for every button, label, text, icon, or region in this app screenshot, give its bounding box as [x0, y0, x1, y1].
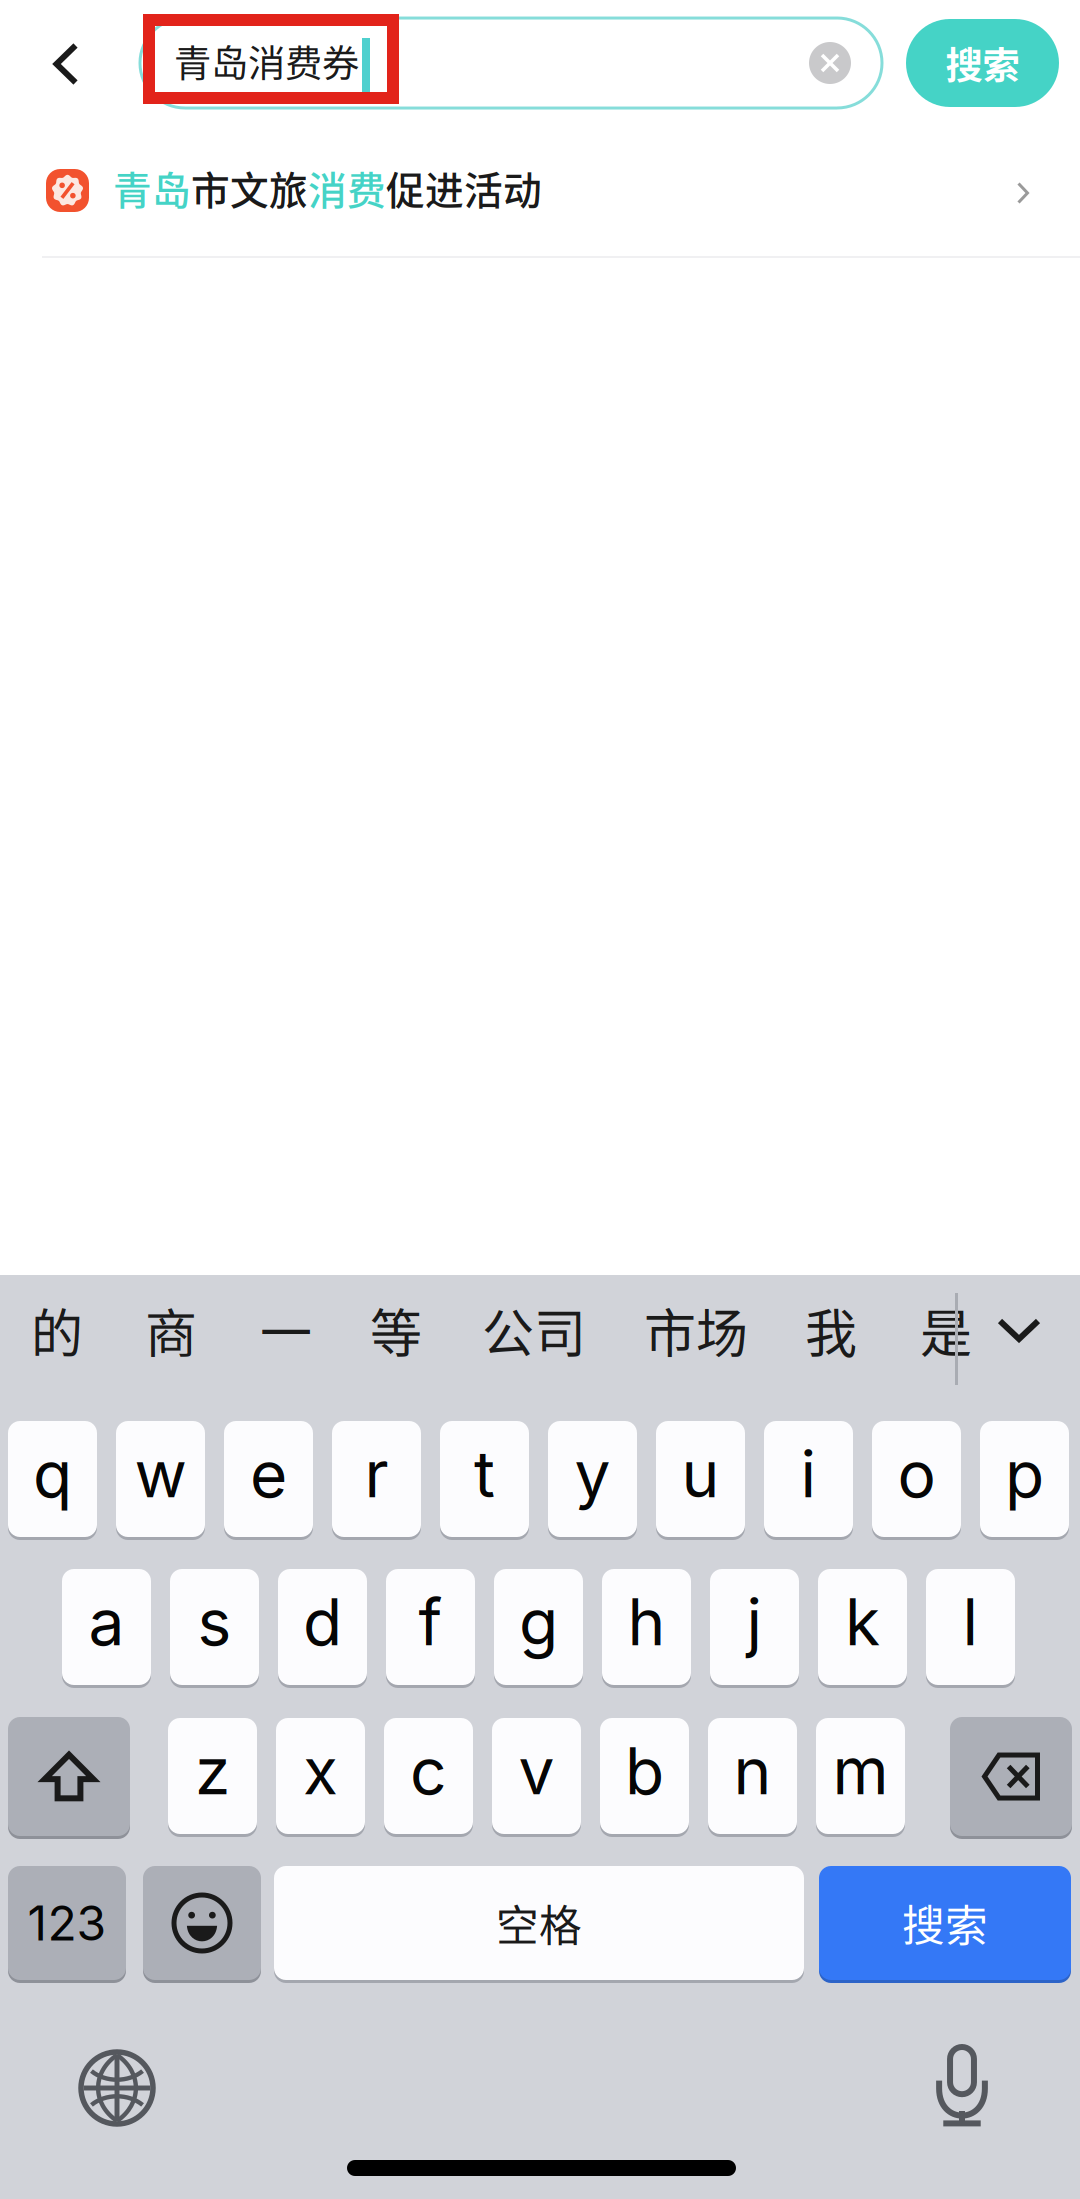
button[interactable]: 市场 [644, 1275, 748, 1385]
staticText: e [250, 1435, 287, 1513]
button[interactable]: 公司 [482, 1275, 586, 1385]
button[interactable]: Switch keyboard [62, 2033, 172, 2143]
staticText: 搜索 [945, 36, 1019, 90]
button[interactable]: n [708, 1718, 797, 1834]
button[interactable]: x [276, 1718, 365, 1834]
staticText: b [625, 1732, 664, 1810]
button[interactable]: f [386, 1569, 475, 1685]
button[interactable]: s [170, 1569, 259, 1685]
button[interactable]: Clear text [794, 18, 866, 108]
button[interactable]: i [764, 1421, 853, 1537]
staticText: 市场 [644, 1292, 748, 1368]
button[interactable]: a [62, 1569, 151, 1685]
button[interactable]: 是 [920, 1275, 972, 1385]
button[interactable]: Hide candidates [974, 1275, 1064, 1385]
staticText: 市文旅 [191, 160, 308, 216]
button[interactable]: 一 [260, 1275, 312, 1385]
staticText: 我 [805, 1292, 857, 1368]
button[interactable]: 的 [31, 1275, 83, 1385]
button[interactable]: 等 [370, 1275, 422, 1385]
button[interactable]: p [980, 1421, 1069, 1537]
button[interactable]: j [710, 1569, 799, 1685]
staticText: d [303, 1583, 342, 1661]
staticText: 青岛消费券 [174, 34, 359, 88]
staticText: w [134, 1435, 186, 1513]
button[interactable]: c [384, 1718, 473, 1834]
staticText: t [474, 1435, 495, 1513]
button[interactable]: Shift [8, 1717, 130, 1836]
button[interactable]: d [278, 1569, 367, 1685]
staticText: k [845, 1583, 880, 1661]
staticText: n [733, 1732, 771, 1810]
staticText: h [627, 1583, 665, 1661]
staticText: a [88, 1583, 124, 1661]
staticText: u [681, 1435, 719, 1513]
staticText: 一 [260, 1292, 312, 1368]
button[interactable]: Delete [950, 1717, 1072, 1836]
staticText: o [897, 1435, 935, 1513]
staticText: j [746, 1583, 762, 1661]
staticText: 搜索 [902, 1892, 988, 1954]
button[interactable]: b [600, 1718, 689, 1834]
staticText: 商 [145, 1292, 197, 1368]
button[interactable]: Emoji [143, 1866, 261, 1980]
button[interactable]: 搜索 [906, 19, 1059, 107]
button[interactable]: r [332, 1421, 421, 1537]
staticText: 消费 [308, 160, 386, 216]
staticText: 空格 [496, 1892, 582, 1954]
staticText: x [303, 1732, 338, 1810]
button[interactable]: 空格 [274, 1866, 804, 1980]
staticText: q [33, 1435, 72, 1513]
staticText: 的 [31, 1292, 83, 1368]
staticText: s [197, 1583, 231, 1661]
staticText: 促进活动 [386, 160, 542, 216]
staticText: 123 [27, 1894, 106, 1952]
button[interactable]: t [440, 1421, 529, 1537]
button[interactable]: Back [18, 2, 114, 126]
button[interactable]: q [8, 1421, 97, 1537]
button[interactable]: 我 [805, 1275, 857, 1385]
button[interactable]: e [224, 1421, 313, 1537]
staticText: l [962, 1583, 978, 1661]
button[interactable]: k [818, 1569, 907, 1685]
button[interactable]: g [494, 1569, 583, 1685]
button[interactable]: w [116, 1421, 205, 1537]
staticText: f [418, 1583, 442, 1661]
button[interactable]: m [816, 1718, 905, 1834]
staticText: c [410, 1732, 447, 1810]
button[interactable]: 商 [145, 1275, 197, 1385]
staticText: y [574, 1435, 610, 1513]
button[interactable]: l [926, 1569, 1015, 1685]
button[interactable]: u [656, 1421, 745, 1537]
staticText: m [832, 1732, 888, 1810]
button[interactable]: Dictation [907, 2032, 1017, 2142]
button[interactable]: y [548, 1421, 637, 1537]
button[interactable]: 搜索 [819, 1866, 1071, 1980]
staticText: p [1005, 1435, 1044, 1513]
button[interactable]: v [492, 1718, 581, 1834]
staticText: 等 [370, 1292, 422, 1368]
staticText: 公司 [482, 1292, 586, 1368]
button[interactable]: z [168, 1718, 257, 1834]
staticText: v [518, 1732, 554, 1810]
staticText: i [800, 1435, 816, 1513]
button[interactable]: 123 [8, 1866, 126, 1980]
button[interactable]: 青岛 [0, 140, 1080, 256]
staticText: z [195, 1732, 230, 1810]
button[interactable]: o [872, 1421, 961, 1537]
button[interactable]: h [602, 1569, 691, 1685]
staticText: 是 [920, 1292, 972, 1368]
staticText: r [364, 1435, 388, 1513]
staticText: g [519, 1583, 558, 1661]
staticText: 青岛 [113, 160, 191, 216]
